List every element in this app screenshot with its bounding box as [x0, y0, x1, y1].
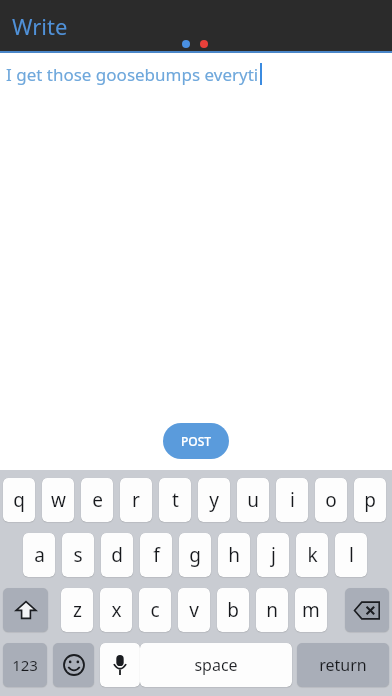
staticText: z — [73, 597, 82, 623]
staticText: I get those goosebumps everyti — [6, 63, 259, 86]
button[interactable]: Emoji — [53, 643, 94, 687]
staticText: p — [364, 487, 376, 513]
button[interactable]: 123 — [3, 643, 47, 687]
button[interactable]: POST — [163, 423, 229, 459]
staticText: y — [209, 487, 219, 513]
button[interactable]: n — [256, 588, 288, 632]
button[interactable]: Shift — [3, 588, 48, 632]
staticText: d — [111, 542, 123, 568]
staticText: j — [271, 542, 276, 568]
button[interactable]: q — [3, 478, 35, 522]
button[interactable]: l — [335, 533, 367, 577]
button[interactable]: x — [100, 588, 132, 632]
staticText: s — [73, 542, 83, 568]
staticText: POST — [181, 433, 212, 449]
staticText: o — [325, 487, 337, 513]
staticText: x — [111, 597, 122, 623]
staticText: n — [266, 597, 278, 623]
button[interactable]: j — [257, 533, 289, 577]
button[interactable]: g — [179, 533, 211, 577]
staticText: q — [13, 487, 25, 513]
button[interactable]: w — [42, 478, 74, 522]
button[interactable]: e — [81, 478, 113, 522]
staticText: g — [189, 542, 201, 568]
button[interactable]: i — [276, 478, 308, 522]
staticText: v — [189, 597, 199, 623]
button[interactable]: u — [237, 478, 269, 522]
staticText: a — [34, 542, 45, 568]
button[interactable]: c — [139, 588, 171, 632]
staticText: b — [227, 597, 239, 623]
button[interactable]: p — [354, 478, 386, 522]
button[interactable]: t — [159, 478, 191, 522]
button[interactable]: Write — [12, 11, 68, 41]
staticText: w — [51, 487, 66, 513]
staticText: u — [247, 487, 259, 513]
staticText: return — [319, 654, 367, 676]
button[interactable]: f — [140, 533, 172, 577]
staticText: m — [302, 597, 320, 623]
staticText: f — [153, 542, 160, 568]
staticText: i — [290, 487, 295, 513]
staticText: k — [307, 542, 318, 568]
staticText: e — [92, 487, 103, 513]
button[interactable]: v — [178, 588, 210, 632]
staticText: r — [132, 487, 140, 513]
button[interactable]: m — [295, 588, 327, 632]
button[interactable]: I get those goosebumps everyti — [6, 60, 392, 88]
button[interactable]: d — [101, 533, 133, 577]
button[interactable]: space — [140, 643, 292, 687]
button[interactable]: o — [315, 478, 347, 522]
button[interactable]: z — [61, 588, 93, 632]
staticText: 123 — [12, 655, 38, 675]
staticText: l — [349, 542, 354, 568]
staticText: h — [228, 542, 240, 568]
staticText: t — [172, 487, 179, 513]
button[interactable]: h — [218, 533, 250, 577]
button[interactable]: k — [296, 533, 328, 577]
staticText: space — [194, 654, 238, 676]
button[interactable]: return — [297, 643, 389, 687]
button[interactable]: y — [198, 478, 230, 522]
button[interactable]: b — [217, 588, 249, 632]
button[interactable]: Voice input — [100, 643, 140, 687]
button[interactable]: a — [23, 533, 55, 577]
button[interactable]: r — [120, 478, 152, 522]
button[interactable]: Backspace — [345, 588, 389, 632]
staticText: c — [150, 597, 160, 623]
button[interactable]: s — [62, 533, 94, 577]
